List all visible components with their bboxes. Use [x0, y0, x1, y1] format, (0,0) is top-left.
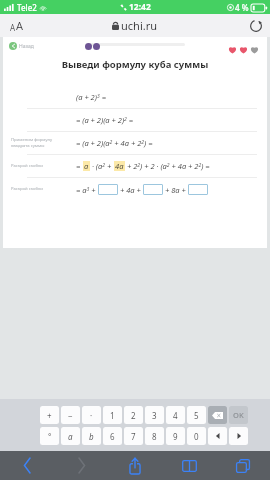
staticText: Раскрой скобки	[11, 186, 43, 192]
staticText: (a + 2)3 =	[76, 92, 106, 102]
button[interactable]: Move left	[208, 427, 227, 445]
staticText: °	[48, 431, 52, 442]
button[interactable]: OK	[229, 406, 248, 424]
button[interactable]: 5	[187, 406, 206, 424]
staticText: A	[16, 18, 24, 33]
staticText: Tele2	[17, 2, 37, 13]
staticText: = (a + 2)(a2 + 4a + 22) =	[76, 138, 153, 148]
staticText: 1	[110, 410, 115, 421]
staticText: 8	[152, 431, 157, 442]
button[interactable]: 2	[124, 406, 143, 424]
button[interactable]: Move right	[229, 427, 248, 445]
button[interactable]: b	[82, 427, 101, 445]
staticText: 5	[194, 410, 199, 421]
staticText: 0	[194, 431, 199, 442]
button[interactable]: 7	[124, 427, 143, 445]
button[interactable]: 8	[145, 427, 164, 445]
button[interactable]: 0	[187, 427, 206, 445]
staticText: uchi.ru	[121, 18, 158, 33]
staticText: a	[84, 161, 89, 171]
staticText: 9	[173, 431, 178, 442]
staticText: 2	[131, 410, 136, 421]
button[interactable]: Answer field	[188, 184, 208, 195]
button[interactable]: °	[40, 427, 59, 445]
staticText: + 4a +	[118, 185, 143, 195]
staticText: =	[76, 161, 83, 171]
staticText: 4	[173, 410, 178, 421]
staticText: = a3 +	[76, 185, 98, 195]
button[interactable]: Bookmarks	[162, 451, 216, 480]
button[interactable]: 4	[166, 406, 185, 424]
button[interactable]: 6	[103, 427, 122, 445]
button[interactable]: Backspace	[208, 406, 227, 424]
button[interactable]: Tabs	[216, 451, 270, 480]
button[interactable]: 1	[103, 406, 122, 424]
button[interactable]: 3	[145, 406, 164, 424]
staticText: 12:42	[129, 1, 151, 13]
staticText: ·	[90, 410, 93, 421]
staticText: A	[10, 22, 16, 33]
button[interactable]: −	[61, 406, 80, 424]
staticText: + 22) + 2 · (a2 + 4a + 22) =	[125, 161, 210, 171]
button[interactable]: Answer field	[143, 184, 163, 195]
staticText: −	[68, 410, 73, 421]
staticText: Назад	[19, 43, 34, 50]
staticText: + 8a +	[163, 185, 188, 195]
staticText: Применим формулу квадрата суммы	[11, 137, 53, 149]
button[interactable]: Answer field	[98, 184, 118, 195]
staticText: 6	[110, 431, 115, 442]
button[interactable]: ·	[82, 406, 101, 424]
staticText: Выведи формулу куба суммы	[23, 58, 247, 71]
staticText: Раскрой скобки	[11, 163, 43, 169]
button[interactable]: a	[61, 427, 80, 445]
button[interactable]: 9	[166, 427, 185, 445]
staticText: = (a + 2)(a + 2)2 =	[76, 115, 134, 125]
staticText: a	[68, 431, 73, 442]
button[interactable]: +	[40, 406, 59, 424]
staticText: 4 %	[235, 2, 249, 13]
button[interactable]: Back	[0, 451, 54, 480]
staticText: 4a	[115, 161, 124, 171]
button[interactable]: Share	[108, 451, 162, 480]
staticText: 3	[152, 410, 157, 421]
button[interactable]: Text size	[6, 16, 28, 35]
staticText: b	[89, 431, 94, 442]
staticText: OK	[233, 410, 244, 420]
button[interactable]: Reload	[248, 18, 264, 34]
staticText: 7	[131, 431, 136, 442]
button[interactable]: Назад	[9, 42, 34, 50]
staticText: · (a2 +	[90, 161, 114, 171]
staticText: +	[47, 410, 52, 421]
button[interactable]: uchi.ru	[112, 18, 158, 33]
